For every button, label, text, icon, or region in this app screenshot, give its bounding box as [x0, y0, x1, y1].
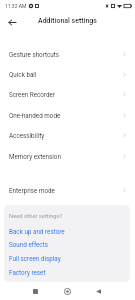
button[interactable]: Screen Recorder — [0, 84, 135, 104]
staticText: Sound effects — [9, 241, 48, 248]
button[interactable]: Sound effects — [4, 237, 130, 251]
staticText: Quick ball — [9, 71, 37, 78]
staticText: Screen Recorder — [9, 91, 56, 98]
button[interactable]: Factory reset — [4, 265, 130, 279]
button[interactable]: One-handed mode — [0, 105, 135, 125]
button[interactable]: Back — [4, 14, 20, 30]
staticText: One-handed mode — [9, 112, 61, 119]
staticText: Gesture shortcuts — [9, 51, 60, 58]
button[interactable]: Memory extension — [0, 146, 135, 166]
staticText: 11:32 AM — [5, 3, 27, 9]
staticText: Need other settings? — [9, 213, 63, 220]
button[interactable]: Enterprise mode — [0, 180, 135, 200]
button[interactable]: Accessibility — [0, 125, 135, 145]
staticText: Memory extension — [9, 153, 61, 160]
button[interactable]: Quick ball — [0, 64, 135, 84]
button[interactable]: Gesture shortcuts — [0, 44, 135, 64]
button[interactable]: Full screen display — [4, 251, 130, 265]
button[interactable]: Recent apps — [26, 282, 45, 300]
button[interactable]: Back — [89, 282, 108, 300]
staticText: Accessibility — [9, 132, 45, 139]
staticText: Full screen display — [9, 255, 61, 262]
staticText: Factory reset — [9, 269, 46, 276]
staticText: Back up and restore — [9, 228, 65, 235]
staticText: Additional settings — [38, 17, 97, 25]
button[interactable]: Home — [58, 282, 77, 300]
button[interactable]: Back up and restore — [4, 224, 130, 238]
staticText: Enterprise mode — [9, 187, 55, 194]
